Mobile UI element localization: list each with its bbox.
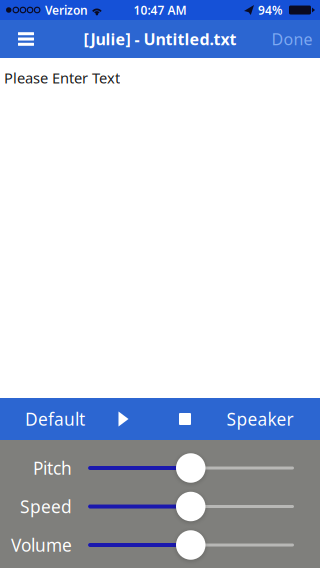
- staticText: 94%: [258, 2, 283, 18]
- staticText: Speed: [20, 495, 72, 518]
- staticText: Speaker: [226, 407, 293, 430]
- staticText: Pitch: [33, 456, 72, 479]
- button[interactable]: Play: [110, 398, 137, 440]
- staticText: Default: [25, 407, 85, 430]
- button[interactable]: Menu: [0, 20, 52, 58]
- staticText: Verizon: [45, 2, 88, 18]
- staticText: Done: [271, 28, 312, 50]
- staticText: Please Enter Text: [4, 68, 120, 87]
- button[interactable]: Stop: [137, 398, 233, 440]
- button[interactable]: Done: [264, 20, 320, 58]
- button[interactable]: Speaker: [233, 398, 287, 440]
- button[interactable]: Default: [0, 398, 110, 440]
- staticText: 10:47 AM: [133, 2, 186, 18]
- staticText: Volume: [11, 533, 72, 556]
- staticText: [Julie] - Untitled.txt: [83, 28, 236, 50]
